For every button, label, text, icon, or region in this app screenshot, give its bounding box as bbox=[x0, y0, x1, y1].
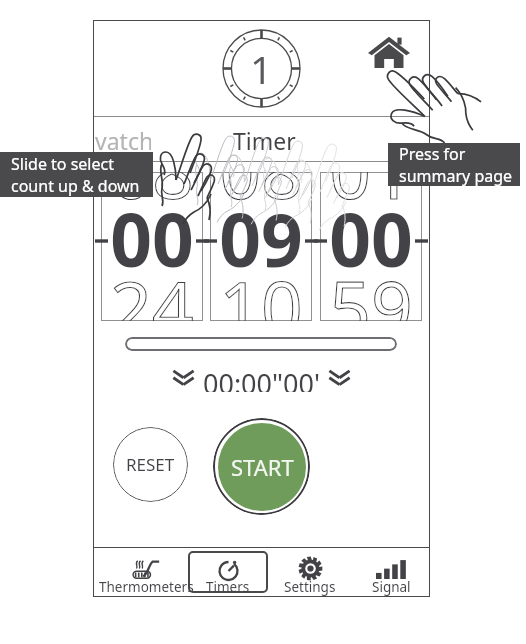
staticText: 01 bbox=[320, 172, 422, 220]
staticText: Settings bbox=[284, 578, 336, 596]
button[interactable]: Count up bbox=[328, 369, 351, 388]
staticText: Slide to select bbox=[11, 153, 114, 175]
button[interactable]: Thermometers bbox=[90, 547, 202, 596]
staticText: 10 bbox=[210, 257, 312, 321]
button[interactable]: Settings bbox=[254, 547, 366, 596]
staticText: 08 bbox=[210, 172, 312, 220]
staticText: 00 bbox=[320, 189, 422, 288]
staticText: Thermometers bbox=[99, 578, 194, 596]
button[interactable]: 01 bbox=[320, 172, 422, 321]
button[interactable]: Timer progress bbox=[125, 337, 397, 351]
button[interactable]: Timers bbox=[172, 547, 284, 596]
staticText: count up & down bbox=[11, 175, 140, 197]
button[interactable]: vatch bbox=[93, 118, 149, 160]
staticText: 00 bbox=[101, 189, 203, 288]
button[interactable]: 08 bbox=[101, 172, 203, 321]
staticText: 00:00"00' bbox=[203, 365, 320, 392]
staticText: Timers bbox=[206, 578, 250, 596]
staticText: RESET bbox=[126, 453, 175, 476]
staticText: 08 bbox=[101, 172, 203, 220]
button[interactable]: Timer bbox=[221, 118, 293, 160]
staticText: 59 bbox=[320, 257, 422, 321]
button[interactable]: Count down bbox=[172, 369, 195, 388]
staticText: 24 bbox=[101, 257, 203, 321]
button[interactable]: Home, summary page bbox=[361, 28, 417, 76]
button[interactable]: Signal bbox=[335, 547, 447, 596]
staticText: Timer bbox=[233, 125, 296, 156]
button[interactable]: RESET bbox=[113, 427, 188, 502]
staticText: Press for bbox=[399, 143, 466, 165]
staticText: START bbox=[231, 452, 294, 482]
staticText: summary page bbox=[399, 165, 513, 186]
button[interactable]: 08 bbox=[210, 172, 312, 321]
staticText: Signal bbox=[372, 578, 411, 596]
button[interactable]: START bbox=[213, 418, 310, 515]
staticText: 1 bbox=[250, 42, 273, 95]
button[interactable]: Select timer number bbox=[222, 29, 301, 108]
staticText: 09 bbox=[210, 189, 312, 288]
staticText: vatch bbox=[95, 125, 151, 156]
